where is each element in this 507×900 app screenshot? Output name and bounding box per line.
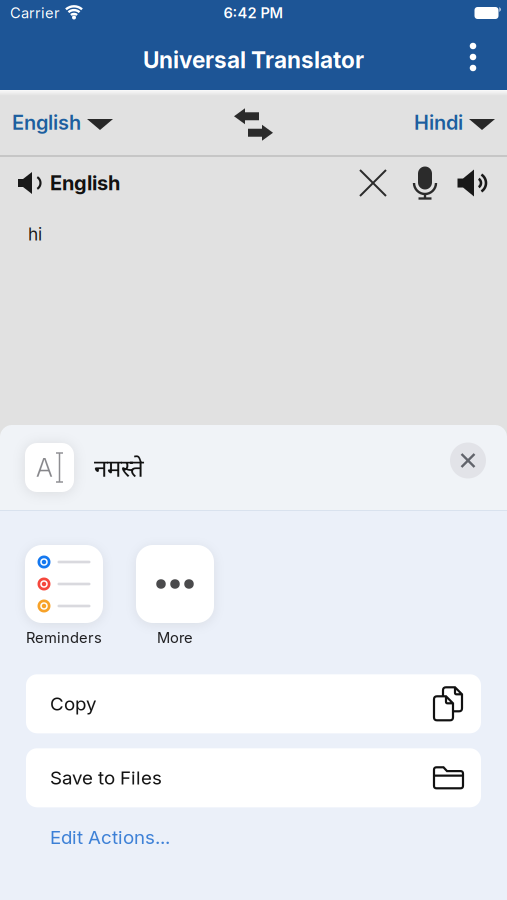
button[interactable]: Reminders: [25, 545, 103, 646]
button[interactable]: Save to Files: [26, 748, 481, 807]
staticText: Edit Actions...: [50, 826, 170, 848]
staticText: Carrier: [10, 4, 60, 22]
button[interactable]: Hindi: [414, 90, 507, 155]
staticText: English: [12, 111, 81, 134]
staticText: Copy: [50, 693, 96, 715]
staticText: English: [50, 171, 120, 195]
button[interactable]: Copy: [26, 674, 481, 733]
button[interactable]: More: [136, 545, 214, 646]
staticText: A: [36, 453, 53, 482]
button[interactable]: English: [0, 90, 113, 155]
button[interactable]: Dictate: [399, 159, 451, 207]
staticText: hi: [28, 224, 42, 244]
staticText: Hindi: [414, 111, 463, 134]
staticText: 6:42 PM: [223, 4, 283, 22]
button[interactable]: Clear text: [347, 159, 399, 207]
button[interactable]: Swap languages: [223, 90, 283, 155]
button[interactable]: Edit Actions...: [0, 807, 170, 848]
staticText: More: [157, 629, 193, 646]
button[interactable]: Close: [450, 449, 486, 485]
staticText: Save to Files: [50, 767, 162, 789]
button[interactable]: More options: [453, 38, 493, 82]
button[interactable]: Speak: [451, 159, 495, 207]
staticText: Universal Translator: [143, 47, 364, 73]
staticText: नमस्ते: [94, 452, 144, 483]
staticText: Reminders: [26, 629, 102, 646]
